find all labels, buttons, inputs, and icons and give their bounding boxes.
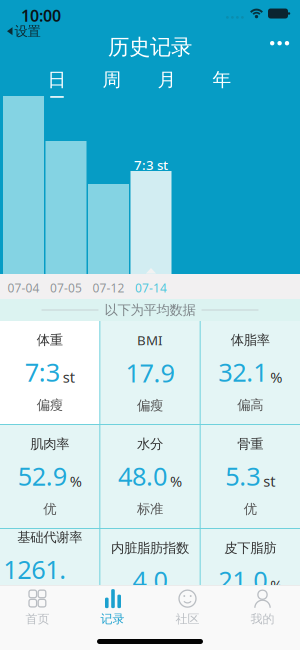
staticText: %	[270, 575, 282, 595]
staticText: 偏瘦	[137, 397, 163, 414]
staticText: 设置	[14, 23, 40, 39]
button[interactable]: 肌肉率	[0, 425, 99, 528]
button[interactable]: 设置	[1, 21, 46, 41]
staticText: 标准	[237, 605, 263, 621]
staticText: 48.0	[118, 459, 167, 493]
staticText: 体脂率	[231, 332, 270, 348]
staticText: 7:3 st	[134, 156, 168, 174]
staticText: 历史记录	[108, 34, 192, 60]
button[interactable]: 年	[200, 67, 244, 99]
button[interactable]: 记录	[75, 585, 150, 629]
staticText: 07-04	[7, 280, 39, 296]
staticText: %	[170, 471, 182, 491]
staticText: %	[270, 367, 282, 387]
button[interactable]: 皮下脂肪	[201, 529, 300, 632]
staticText: 内脏脂肪指数	[111, 540, 189, 556]
button[interactable]: BMI	[100, 321, 200, 424]
staticText: 52.9	[18, 459, 67, 493]
staticText: %	[70, 471, 82, 491]
staticText: 1261.0	[3, 552, 66, 620]
staticText: 以下为平均数据	[104, 302, 195, 318]
button[interactable]: 周	[90, 67, 134, 99]
staticText: 偏高	[237, 397, 263, 413]
staticText: 偏瘦	[37, 397, 63, 413]
staticText: 优	[244, 501, 257, 517]
staticText: 07-14	[135, 280, 167, 296]
staticText: 年	[212, 68, 231, 91]
staticText: 基础代谢率	[17, 529, 82, 545]
staticText: 21.0	[218, 563, 267, 597]
button[interactable]: 骨重	[201, 425, 300, 528]
staticText: 我的	[250, 612, 274, 626]
staticText: 07-05	[50, 280, 82, 296]
button[interactable]: 体脂率	[201, 321, 300, 424]
staticText: 月	[157, 68, 176, 91]
staticText: st	[263, 471, 275, 491]
button[interactable]: 社区	[150, 585, 225, 629]
staticText: 7:3	[25, 355, 60, 389]
button[interactable]: 月	[145, 67, 189, 99]
staticText: 10:00	[21, 5, 61, 26]
staticText: 07-12	[92, 280, 124, 296]
staticText: 17.9	[125, 356, 174, 389]
staticText: 标准	[137, 501, 163, 517]
staticText: 社区	[175, 612, 199, 626]
staticText: st	[63, 367, 75, 387]
staticText: 32.1	[218, 355, 267, 389]
button[interactable]: 体重	[0, 321, 99, 424]
staticText: 肌肉率	[30, 436, 69, 452]
button[interactable]: 我的	[225, 585, 300, 629]
button[interactable]: 水分	[100, 425, 200, 528]
staticText: 首页	[25, 612, 49, 626]
staticText: BMI	[137, 331, 163, 349]
staticText: 记录	[100, 612, 124, 626]
staticText: 日	[47, 68, 66, 91]
button[interactable]: 内脏脂肪指数	[100, 529, 200, 632]
staticText: 优	[43, 501, 56, 517]
staticText: 4.0	[132, 563, 167, 597]
staticText: 5.3	[225, 459, 260, 493]
button[interactable]: 更多	[263, 32, 296, 54]
button[interactable]: 基础代谢率	[0, 529, 99, 632]
staticText: 皮下脂肪	[224, 540, 276, 556]
staticText: 骨重	[237, 436, 263, 452]
staticText: 体重	[37, 332, 63, 348]
staticText: 周	[102, 68, 121, 91]
staticText: 水分	[137, 436, 163, 452]
button[interactable]: 首页	[0, 585, 75, 629]
button[interactable]: 日	[35, 67, 79, 99]
